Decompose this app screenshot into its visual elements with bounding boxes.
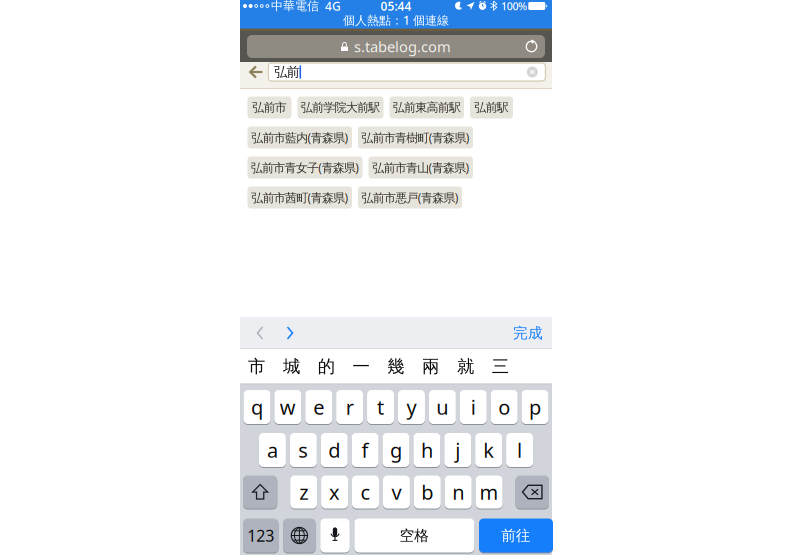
- staticText: 弘前市藍内(青森県): [251, 129, 348, 145]
- button[interactable]: 弘前駅: [470, 96, 513, 118]
- button[interactable]: Back: [244, 62, 268, 81]
- staticText: p: [529, 394, 541, 420]
- button[interactable]: o: [491, 389, 518, 424]
- button[interactable]: 弘前市藍内(青森県): [247, 126, 352, 148]
- button[interactable]: [243, 475, 277, 509]
- button[interactable]: h: [413, 432, 440, 467]
- button[interactable]: x: [321, 475, 348, 509]
- button[interactable]: Reload: [525, 39, 545, 53]
- button[interactable]: 弘前市悪戸(青森県): [358, 186, 462, 208]
- button[interactable]: Next field: [275, 317, 305, 349]
- button[interactable]: [320, 518, 350, 553]
- button[interactable]: Previous field: [245, 317, 275, 349]
- button[interactable]: [515, 475, 549, 509]
- staticText: 兩: [422, 356, 439, 377]
- staticText: r: [346, 394, 354, 420]
- staticText: 城: [283, 356, 300, 377]
- button[interactable]: 弘前市: [247, 96, 291, 118]
- button[interactable]: 城: [274, 349, 309, 384]
- staticText: 05:44: [380, 0, 411, 14]
- button[interactable]: e: [305, 389, 332, 424]
- button[interactable]: [283, 518, 316, 553]
- button[interactable]: 弘前市青山(青森県): [368, 156, 473, 178]
- staticText: 空格: [400, 526, 429, 544]
- button[interactable]: 兩: [413, 349, 448, 384]
- button[interactable]: a: [259, 432, 286, 467]
- button[interactable]: b: [414, 475, 441, 509]
- button[interactable]: s: [290, 432, 317, 467]
- button[interactable]: k: [475, 432, 502, 467]
- button[interactable]: 幾: [378, 349, 413, 384]
- button[interactable]: 的: [309, 349, 344, 384]
- staticText: 123: [247, 525, 274, 546]
- button[interactable]: w: [274, 389, 301, 424]
- button[interactable]: z: [290, 475, 317, 509]
- staticText: c: [360, 479, 370, 505]
- button[interactable]: i: [460, 389, 487, 424]
- staticText: 弘前駅: [474, 100, 509, 115]
- staticText: a: [267, 437, 278, 463]
- staticText: 的: [318, 356, 335, 377]
- button[interactable]: c: [352, 475, 379, 509]
- staticText: 100%: [501, 0, 527, 13]
- staticText: 弘前市: [252, 100, 287, 115]
- staticText: 弘前: [274, 64, 299, 80]
- staticText: q: [251, 394, 263, 420]
- staticText: u: [436, 394, 448, 420]
- staticText: n: [452, 479, 464, 505]
- button[interactable]: 123: [243, 518, 278, 553]
- staticText: l: [517, 437, 522, 463]
- button[interactable]: p: [521, 389, 548, 424]
- button[interactable]: u: [429, 389, 456, 424]
- button[interactable]: n: [445, 475, 472, 509]
- button[interactable]: 空格: [354, 518, 474, 553]
- button[interactable]: 完成: [503, 317, 547, 349]
- button[interactable]: g: [382, 432, 409, 467]
- button[interactable]: v: [383, 475, 410, 509]
- staticText: 幾: [387, 356, 404, 377]
- staticText: f: [362, 437, 369, 463]
- button[interactable]: 就: [448, 349, 483, 384]
- staticText: g: [390, 437, 402, 463]
- staticText: 中華電信: [271, 0, 319, 13]
- staticText: 三: [492, 356, 509, 377]
- staticText: 弘前市悪戸(青森県): [361, 189, 459, 205]
- staticText: 弘前市茜町(青森県): [251, 189, 348, 205]
- button[interactable]: d: [321, 432, 348, 467]
- button[interactable]: 三: [483, 349, 518, 384]
- button[interactable]: y: [398, 389, 425, 424]
- button[interactable]: 弘前市青樹町(青森県): [358, 126, 473, 148]
- staticText: 弘前市青女子(青森県): [251, 159, 359, 175]
- staticText: t: [377, 394, 384, 420]
- button[interactable]: q: [243, 389, 270, 424]
- button[interactable]: 弘前東高前駅: [389, 96, 464, 118]
- staticText: 完成: [513, 324, 543, 342]
- button[interactable]: l: [506, 432, 533, 467]
- button[interactable]: j: [444, 432, 471, 467]
- staticText: 前往: [501, 526, 531, 544]
- button[interactable]: m: [476, 475, 503, 509]
- staticText: 一: [352, 356, 369, 377]
- button[interactable]: 市: [239, 349, 274, 384]
- staticText: 個人熱點：1 個連線: [343, 12, 449, 28]
- button[interactable]: f: [352, 432, 379, 467]
- staticText: b: [421, 479, 433, 505]
- staticText: 弘前市青樹町(青森県): [361, 129, 470, 145]
- button[interactable]: 弘前市茜町(青森県): [247, 186, 352, 208]
- staticText: x: [329, 479, 340, 505]
- button[interactable]: r: [336, 389, 363, 424]
- staticText: 就: [457, 356, 474, 377]
- staticText: v: [391, 479, 401, 505]
- button[interactable]: 一: [344, 349, 378, 384]
- button[interactable]: 前往: [479, 518, 553, 553]
- staticText: w: [280, 394, 296, 420]
- staticText: s.tabelog.com: [354, 37, 451, 56]
- staticText: o: [498, 394, 510, 420]
- staticText: 4G: [325, 0, 341, 14]
- staticText: d: [328, 437, 340, 463]
- button[interactable]: t: [367, 389, 394, 424]
- button[interactable]: 弘前市青女子(青森県): [247, 156, 362, 178]
- staticText: k: [483, 437, 494, 463]
- button[interactable]: 弘前学院大前駅: [297, 96, 383, 118]
- button[interactable]: Clear text: [526, 66, 538, 78]
